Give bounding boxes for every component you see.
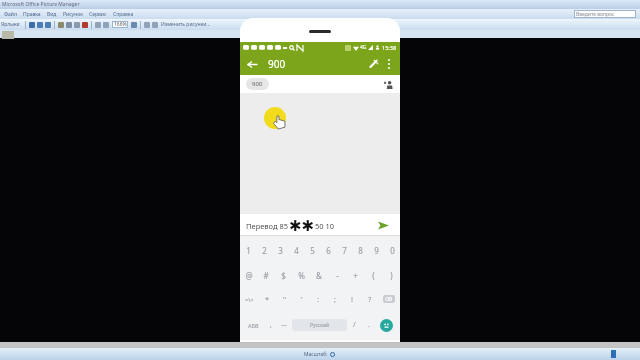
button[interactable]: Файл [1, 11, 20, 18]
staticText: ' [301, 294, 303, 304]
staticText: 6 [326, 245, 331, 256]
button[interactable]: Сервис [86, 11, 110, 18]
button[interactable]: Backspace [378, 288, 400, 310]
button[interactable]: Правка [20, 11, 44, 18]
button[interactable]: ; [327, 288, 344, 310]
staticText: 3 [278, 245, 283, 256]
button[interactable]: 1 [240, 239, 256, 261]
button[interactable]: 7 [336, 239, 352, 261]
staticText: =\< [245, 296, 254, 303]
button[interactable]: 2 [256, 239, 272, 261]
staticText: Microsoft Office Picture Manager [2, 1, 80, 8]
button[interactable]: 0 [384, 239, 400, 261]
button[interactable]: ! [344, 288, 361, 310]
button[interactable] [66, 22, 72, 28]
button[interactable] [45, 22, 51, 28]
button[interactable]: 9 [368, 239, 384, 261]
button[interactable]: 3 [272, 239, 288, 261]
button[interactable]: More options [382, 57, 396, 71]
button[interactable]: Attach [364, 55, 382, 73]
staticText: ; [334, 294, 337, 304]
button[interactable]: Add contact [382, 78, 394, 90]
button[interactable] [74, 22, 80, 28]
staticText: 5 [310, 245, 315, 256]
button[interactable]: ? [361, 288, 378, 310]
button[interactable]: % [292, 264, 310, 286]
staticText: Ярлыки [1, 21, 20, 28]
button[interactable]: $ [274, 264, 292, 286]
button[interactable]: АБВ [242, 313, 264, 337]
button[interactable]: Back [244, 56, 260, 72]
staticText: . [368, 320, 370, 330]
staticText: & [316, 270, 322, 281]
button[interactable]: , [264, 313, 277, 337]
button[interactable]: Введите вопрос [574, 10, 636, 18]
staticText: $ [281, 270, 286, 281]
button[interactable]: Send [374, 216, 392, 234]
button[interactable] [29, 22, 35, 28]
button[interactable]: 166% [112, 21, 128, 28]
button[interactable]: 8 [352, 239, 368, 261]
button[interactable] [144, 22, 150, 28]
button[interactable]: / [347, 313, 362, 337]
staticText: Перевод 85 [246, 221, 289, 231]
button[interactable]: : [310, 288, 327, 310]
staticText: 8 [358, 245, 363, 256]
button[interactable]: Emoji [375, 313, 398, 337]
staticText: Справка [113, 11, 134, 18]
button[interactable]: Recents [366, 342, 382, 358]
button[interactable] [58, 22, 64, 28]
button[interactable]: Русский [292, 319, 347, 331]
button[interactable]: @ [240, 264, 257, 286]
button[interactable]: ) [382, 264, 400, 286]
staticText: 7 [342, 245, 347, 256]
button[interactable]: + [346, 264, 364, 286]
staticText: Сервис [89, 11, 107, 18]
staticText: Рисунок [63, 11, 83, 18]
button[interactable]: Back [258, 342, 274, 358]
button[interactable]: 900 [246, 78, 269, 90]
button[interactable]: Вид [44, 11, 60, 18]
staticText: Изменить рисунки... [161, 21, 211, 28]
staticText: 0 [390, 245, 395, 256]
button[interactable]: Справка [110, 11, 137, 18]
staticText: 4G [360, 44, 367, 51]
button[interactable]: " [276, 288, 293, 310]
button[interactable] [131, 22, 137, 28]
button[interactable]: 900 [268, 57, 286, 71]
button[interactable]: 6 [320, 239, 336, 261]
button[interactable]: Home [312, 342, 328, 358]
staticText: 900 [252, 80, 263, 88]
staticText: ! [351, 294, 354, 304]
button[interactable] [152, 22, 158, 28]
button[interactable]: ( [364, 264, 382, 286]
button[interactable]: - [328, 264, 346, 286]
staticText: , [270, 320, 272, 330]
staticText: 2 [262, 245, 267, 256]
button[interactable]: 4 [288, 239, 304, 261]
button[interactable]: 5 [304, 239, 320, 261]
button[interactable]: Рисунок [60, 11, 86, 18]
staticText: Масштаб: [304, 351, 328, 358]
button[interactable]: Zoom [330, 352, 336, 358]
button[interactable] [37, 22, 43, 28]
button[interactable] [95, 22, 101, 28]
button[interactable]: =\< [240, 288, 259, 310]
button[interactable]: ' [293, 288, 310, 310]
button[interactable]: # [257, 264, 274, 286]
button[interactable] [264, 107, 286, 129]
button[interactable] [103, 22, 109, 28]
button[interactable]: * [259, 288, 276, 310]
staticText: 15:38 [382, 44, 397, 51]
button[interactable]: Изменить рисунки... [161, 21, 211, 28]
staticText: + [353, 270, 358, 281]
button[interactable]: . [362, 313, 375, 337]
staticText: - [336, 270, 339, 281]
button[interactable]: & [310, 264, 328, 286]
button[interactable]: — [277, 313, 292, 337]
staticText: 166% [114, 21, 127, 28]
button[interactable]: Перевод 85 [246, 217, 374, 234]
button[interactable] [82, 22, 88, 28]
staticText: * [265, 294, 270, 304]
staticText: ? [368, 294, 372, 304]
